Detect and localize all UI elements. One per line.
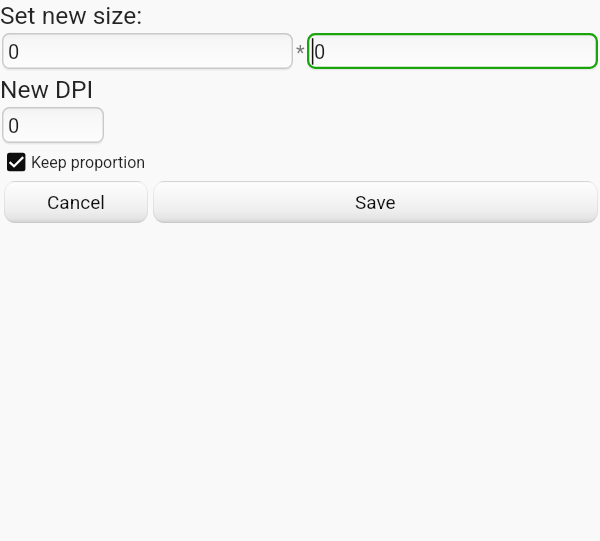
staticText: Cancel xyxy=(47,191,105,213)
button[interactable]: New height xyxy=(307,33,598,69)
staticText: 0 xyxy=(314,40,326,63)
staticText: Save xyxy=(355,191,396,213)
staticText: 0 xyxy=(8,114,20,137)
button[interactable]: Keep proportion xyxy=(7,152,146,172)
staticText: New DPI xyxy=(0,75,94,104)
button[interactable]: New width xyxy=(2,33,293,69)
button[interactable]: Save xyxy=(153,181,598,223)
staticText: 0 xyxy=(8,40,20,63)
button[interactable]: New DPI value xyxy=(2,107,104,143)
staticText: * xyxy=(296,41,305,64)
staticText: Set new size: xyxy=(0,1,143,30)
staticText: Keep proportion xyxy=(31,153,146,172)
button[interactable]: Cancel xyxy=(4,181,148,223)
